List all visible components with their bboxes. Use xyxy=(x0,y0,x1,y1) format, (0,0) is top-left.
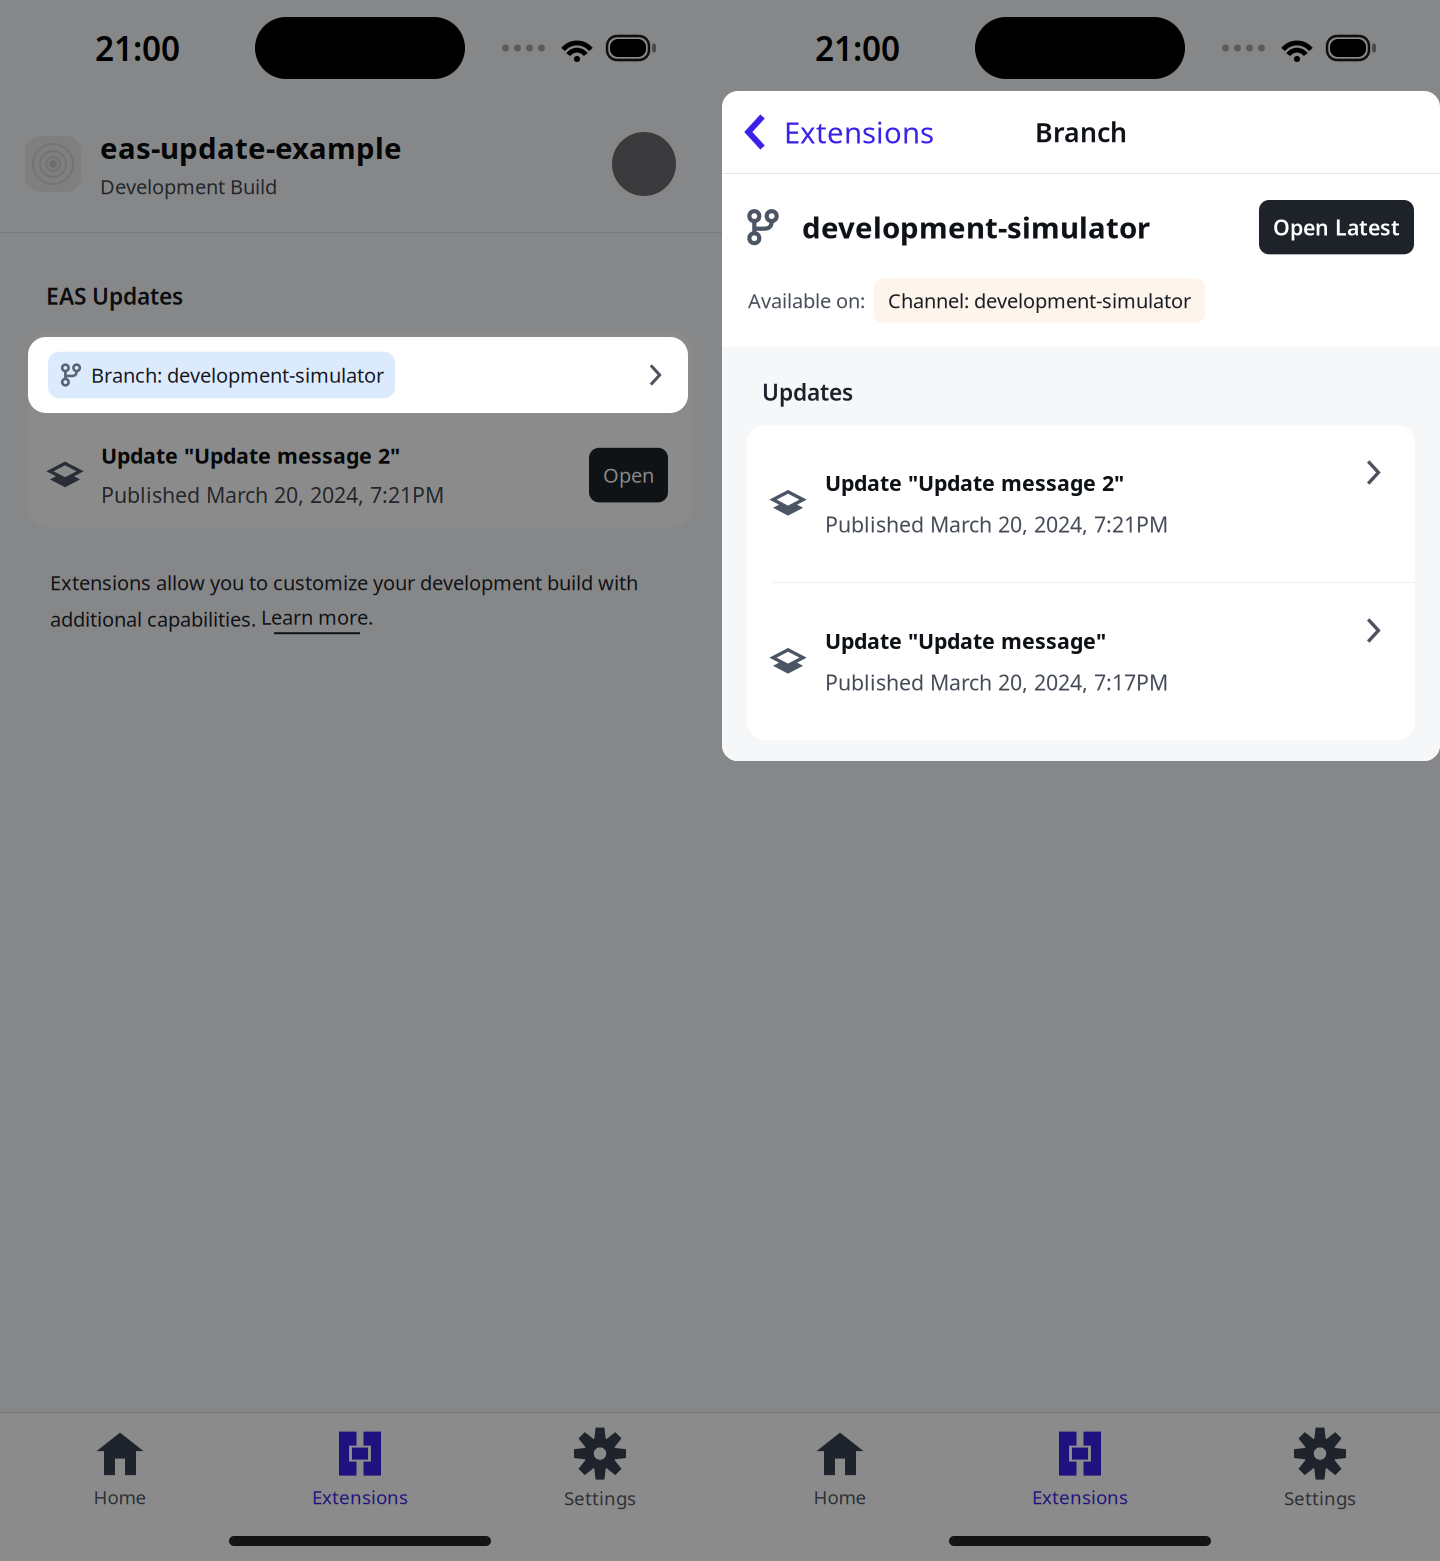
staticText: EAS Updates xyxy=(46,281,183,311)
staticText: Channel: development-simulator xyxy=(888,287,1191,314)
staticText: Home xyxy=(93,1485,146,1509)
button[interactable]: Extensions xyxy=(722,101,934,163)
staticText: Published March 20, 2024, 7:21PM xyxy=(825,510,1168,538)
staticText: Update "Update message 2" xyxy=(101,441,400,470)
button[interactable]: Learn more. xyxy=(261,604,373,634)
staticText: Development Build xyxy=(820,173,997,200)
staticText: eas-update-example xyxy=(820,128,1122,167)
button[interactable]: Settings xyxy=(1200,1416,1440,1518)
staticText: Published March 20, 2024, 7:21PM xyxy=(101,481,444,509)
button[interactable]: Open Latest xyxy=(1259,200,1414,254)
staticText: 21:00 xyxy=(95,26,180,70)
staticText: Branch: development-simulator xyxy=(110,358,547,397)
staticText: development-simulator xyxy=(802,208,1150,247)
staticText: Open xyxy=(1323,462,1374,488)
staticText: Learn more. xyxy=(261,604,373,630)
staticText: Settings xyxy=(564,1486,636,1510)
staticText: Development Build xyxy=(100,173,277,200)
staticText: Extensions allow you to customize your d… xyxy=(50,569,638,596)
button[interactable]: Update "Update message" xyxy=(747,583,1415,740)
staticText: Branch xyxy=(1035,114,1127,150)
staticText: EAS Updates xyxy=(766,281,903,311)
staticText: Extensions xyxy=(784,112,934,151)
staticText: Settings xyxy=(1284,1486,1356,1510)
staticText: additional capabilities. xyxy=(50,606,261,632)
staticText: Home xyxy=(813,1485,866,1509)
button[interactable]: Open xyxy=(589,448,668,502)
staticText: Update "Update message" xyxy=(825,627,1106,655)
button[interactable]: Home xyxy=(0,1417,240,1517)
staticText: Update "Update message 2" xyxy=(825,469,1124,497)
staticText: Branch: development-simulator xyxy=(830,358,1267,397)
staticText: Branch: development-simulator xyxy=(91,362,384,388)
button[interactable]: Update "Update message 2" xyxy=(747,425,1415,582)
staticText: Available on: xyxy=(748,287,865,314)
staticText: Extensions xyxy=(312,1485,408,1509)
staticText: Published March 20, 2024, 7:17PM xyxy=(825,668,1168,696)
staticText: Published March 20, 2024, 7:21PM xyxy=(821,481,1164,509)
button[interactable]: Open xyxy=(1309,448,1388,502)
staticText: Open xyxy=(603,462,654,488)
staticText: Updates xyxy=(762,377,853,407)
staticText: Branch: development-simulator xyxy=(811,362,1104,388)
button[interactable]: Extensions xyxy=(960,1417,1200,1517)
button[interactable]: Branch: development-simulator xyxy=(28,337,688,413)
staticText: Extensions allow you to customize your d… xyxy=(770,569,1358,596)
button[interactable]: Branch: development-simulator xyxy=(748,337,1408,413)
staticText: Extensions xyxy=(1032,1485,1128,1509)
button[interactable]: Settings xyxy=(480,1416,720,1518)
staticText: eas-update-example xyxy=(100,128,402,167)
button[interactable]: Extensions xyxy=(240,1417,480,1517)
staticText: Open Latest xyxy=(1273,213,1400,241)
button[interactable]: Home xyxy=(720,1417,960,1517)
staticText: 21:00 xyxy=(815,26,900,70)
